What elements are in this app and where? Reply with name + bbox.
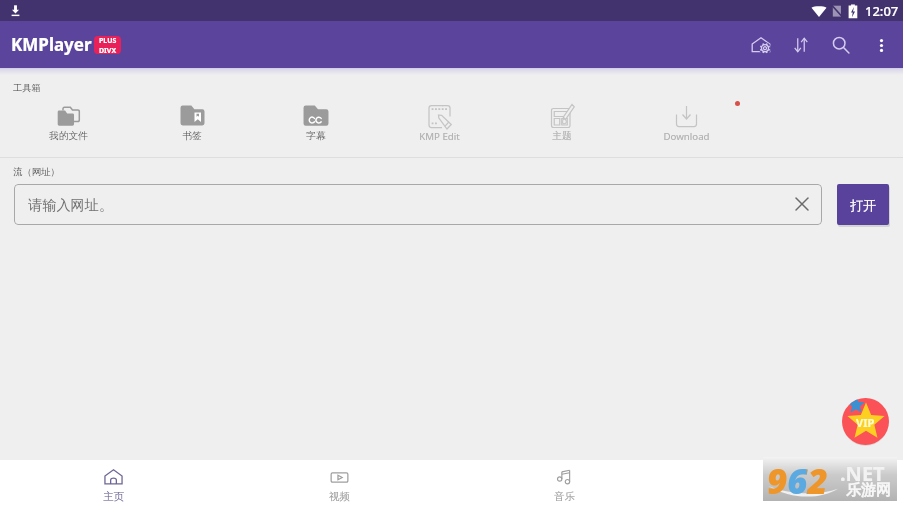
staticText: 乐游网 [846,481,891,500]
staticText: 书签 [182,130,202,142]
button[interactable]: 字幕 [294,101,338,143]
button[interactable]: Search [821,25,861,65]
staticText: Download [663,130,710,143]
button[interactable]: 打开 [837,184,889,225]
button[interactable]: Clear [791,193,815,217]
button[interactable]: 主页 [90,460,136,507]
button[interactable]: 视频 [316,460,362,507]
button[interactable]: Download [653,101,719,143]
staticText: 字幕 [306,130,326,142]
staticText: 主页 [103,490,124,503]
button[interactable]: Home settings [741,25,781,65]
button[interactable]: 请输入网址。 [14,184,822,225]
staticText: 工具箱 [13,82,41,94]
button[interactable]: 主题 [540,101,584,143]
staticText: KMPlayer [11,33,92,56]
staticText: 我的文件 [49,130,88,142]
staticText: DIVX [99,46,117,54]
staticText: 12:07 [865,2,899,20]
staticText: 请输入网址。 [28,196,114,214]
staticText: .NET [840,460,885,487]
button[interactable]: 书签 [170,101,214,143]
staticText: VIP [856,415,875,430]
staticText: KMP Edit [419,130,460,143]
staticText: PLUS [99,36,117,46]
button[interactable]: Sort [781,25,821,65]
button[interactable]: 音乐 [541,460,587,507]
staticText: 打开 [850,197,876,213]
staticText: 主题 [552,130,572,142]
staticText: 962 [767,457,828,501]
staticText: 音乐 [554,490,575,503]
button[interactable]: 我的文件 [46,101,90,143]
staticText: 流（网址） [13,166,60,178]
staticText: 视频 [329,490,350,503]
button[interactable]: VIP [842,398,889,445]
button[interactable]: KMP Edit [409,101,469,143]
button[interactable]: More options [861,25,901,65]
